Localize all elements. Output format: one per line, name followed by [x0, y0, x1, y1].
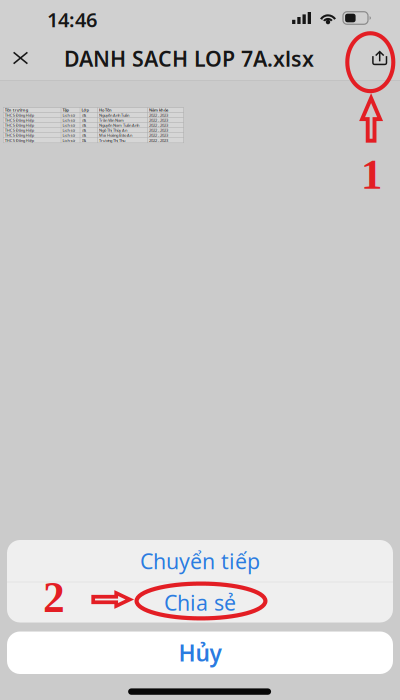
staticText: THCS Đông Hiệp [5, 117, 34, 123]
staticText: THCS Đông Hiệp [5, 138, 34, 143]
button[interactable]: Share [362, 36, 398, 80]
staticText: Mai Hoàng Bảo An [99, 133, 132, 138]
staticText: 2022 - 2023 [149, 138, 168, 143]
staticText: 7A [81, 122, 86, 128]
staticText: Chuyển tiếp [140, 547, 260, 575]
staticText: 2022 - 2023 [149, 133, 168, 138]
button[interactable]: Chuyển tiếp [7, 540, 393, 582]
staticText: Lich sử [62, 138, 75, 143]
button[interactable]: Close [0, 36, 41, 80]
staticText: Trần Văn Nam [99, 117, 124, 123]
staticText: Tập [62, 107, 69, 113]
staticText: Nguyễn Anh Tuấn [99, 112, 129, 118]
staticText: Lich sử [62, 128, 75, 133]
staticText: Lich sử [62, 112, 75, 118]
staticText: Họ Tên [99, 107, 112, 113]
button[interactable]: Hủy [7, 631, 393, 674]
staticText: 7A [81, 133, 86, 138]
staticText: 7A [81, 128, 86, 133]
staticText: 2022 - 2023 [149, 117, 168, 123]
staticText: Lich sử [62, 133, 75, 138]
staticText: 14:46 [47, 6, 97, 33]
staticText: 7A [81, 117, 86, 123]
staticText: THCS Đông Hiệp [5, 128, 34, 133]
staticText: Hủy [178, 638, 221, 668]
staticText: Năm khóa [149, 107, 168, 113]
staticText: 2022 - 2023 [149, 122, 168, 128]
staticText: THCS Đông Hiệp [5, 112, 34, 118]
staticText: Lich sử [62, 117, 75, 123]
button[interactable]: Chia sẻ [7, 582, 393, 622]
staticText: 7A [81, 112, 86, 118]
staticText: Tên trường [5, 107, 29, 113]
staticText: Lớp [81, 107, 89, 113]
staticText: 2022 - 2023 [149, 128, 168, 133]
staticText: 7A [81, 138, 86, 143]
staticText: Chia sẻ [164, 588, 236, 616]
staticText: Trương Thị Thu [99, 138, 125, 143]
staticText: THCS Đông Hiệp [5, 133, 34, 138]
staticText: Lich sử [62, 122, 75, 128]
staticText: DANH SACH LOP 7A.xlsx [64, 44, 314, 73]
staticText: 1 [361, 151, 382, 198]
staticText: THCS Đông Hiệp [5, 122, 34, 128]
staticText: Nguyễn Nam Tuấn Anh [99, 122, 139, 128]
staticText: 2022 - 2023 [149, 112, 168, 118]
staticText: 2 [43, 573, 65, 621]
staticText: Ngô Thị Thùy An [99, 128, 127, 133]
